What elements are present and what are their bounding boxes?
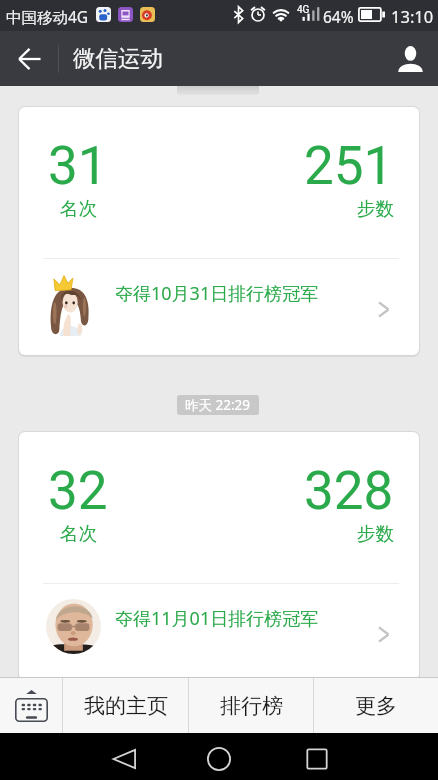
staticText: 夺得11月01日排行榜冠军 [115,606,319,631]
button[interactable]: 我的主页 [63,678,188,733]
staticText: 32 [48,460,108,522]
staticText: 251 [304,135,394,197]
staticText: 昨天 22:29 [185,396,251,414]
button[interactable]: 夺得11月01日排行榜冠军 [19,584,419,680]
staticText: 夺得10月31日排行榜冠军 [115,281,319,306]
staticText: 微信运动 [73,44,163,72]
button[interactable]: Back [102,737,146,780]
button[interactable]: Contacts [383,31,438,86]
staticText: 64% [323,6,354,27]
staticText: 4G [297,4,310,16]
staticText: 更多 [355,693,397,719]
staticText: 我的主页 [84,693,168,719]
button[interactable]: 排行榜 [189,678,313,733]
button[interactable]: 更多 [314,678,438,733]
staticText: 名次 [60,522,97,545]
staticText: 中国移动4G [6,6,89,27]
button[interactable]: Recents [295,737,339,780]
staticText: 13:10 [391,5,434,27]
staticText: 31 [48,135,108,197]
staticText: 步数 [357,197,394,220]
button[interactable]: Home [197,737,241,780]
staticText: 328 [304,460,394,522]
staticText: 名次 [60,197,97,220]
button[interactable]: Keyboard [0,678,62,733]
staticText: 排行榜 [220,693,283,719]
button[interactable]: Back [0,31,58,86]
button[interactable]: 夺得10月31日排行榜冠军 [19,259,419,355]
staticText: 步数 [357,522,394,545]
